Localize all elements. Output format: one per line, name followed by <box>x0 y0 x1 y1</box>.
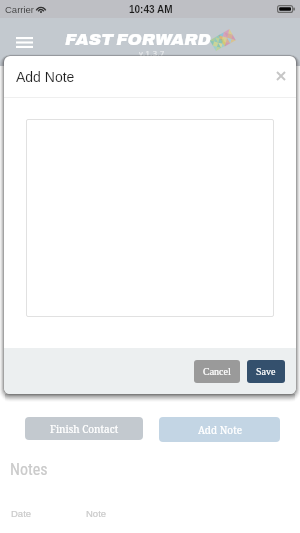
button[interactable]: Save <box>247 360 285 383</box>
staticText: Cancel <box>203 366 231 377</box>
staticText: Date <box>11 508 32 519</box>
button[interactable]: Close <box>270 65 292 87</box>
staticText: Carrier <box>5 4 35 15</box>
staticText: Note <box>86 508 107 519</box>
button[interactable]: Add Note <box>159 417 280 442</box>
button[interactable]: Cancel <box>194 360 240 383</box>
staticText: Add Note <box>16 69 75 85</box>
staticText: Finish Contact <box>50 422 119 436</box>
staticText: Save <box>256 366 276 377</box>
button[interactable]: Menu <box>5 25 44 59</box>
staticText: Add Note <box>198 423 242 437</box>
staticText: 10:43 AM <box>129 4 173 15</box>
staticText: Notes <box>10 460 48 479</box>
staticText: v.1.3.7 <box>139 48 165 58</box>
staticText: FAST FORWARD <box>65 30 211 48</box>
button[interactable]: Finish Contact <box>25 417 143 440</box>
